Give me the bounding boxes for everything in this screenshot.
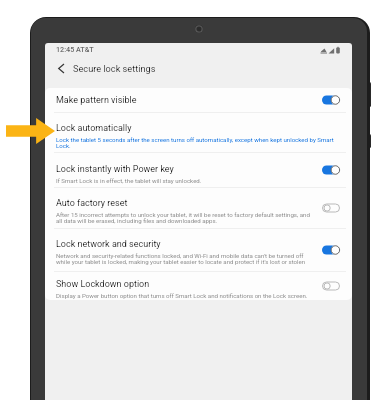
button[interactable]: Switch on bbox=[322, 245, 340, 255]
button[interactable]: Show Lockdown option bbox=[45, 272, 352, 300]
button[interactable]: Lock network and security bbox=[45, 229, 352, 271]
staticText: Make pattern visible bbox=[56, 95, 137, 106]
button[interactable]: Switch off bbox=[322, 203, 340, 213]
staticText: Lock network and security bbox=[56, 239, 161, 250]
button[interactable]: Auto factory reset bbox=[45, 188, 352, 228]
staticText: Display a Power button option that turns… bbox=[56, 292, 308, 299]
staticText: Auto factory reset bbox=[56, 198, 128, 209]
button[interactable]: Lock instantly with Power key bbox=[45, 153, 352, 187]
staticText: Lock automatically bbox=[56, 123, 132, 134]
button[interactable]: Navigate up bbox=[53, 60, 69, 76]
staticText: Network and security-related functions l… bbox=[56, 252, 314, 266]
staticText: If Smart Lock is in effect, the tablet w… bbox=[56, 177, 202, 184]
button[interactable]: Make pattern visible bbox=[45, 88, 352, 112]
button[interactable]: Switch on bbox=[322, 165, 340, 175]
staticText: Secure lock settings bbox=[73, 63, 156, 74]
button[interactable]: Switch off bbox=[322, 281, 340, 291]
staticText: 12:45 AT&T bbox=[56, 45, 94, 53]
staticText: Lock instantly with Power key bbox=[56, 164, 174, 175]
staticText: After 15 incorrect attempts to unlock yo… bbox=[56, 211, 314, 225]
button[interactable]: Lock automatically bbox=[45, 113, 352, 152]
button[interactable]: Switch on bbox=[322, 95, 340, 105]
staticText: Show Lockdown option bbox=[56, 279, 150, 290]
staticText: Lock the tablet 5 seconds after the scre… bbox=[56, 136, 340, 150]
